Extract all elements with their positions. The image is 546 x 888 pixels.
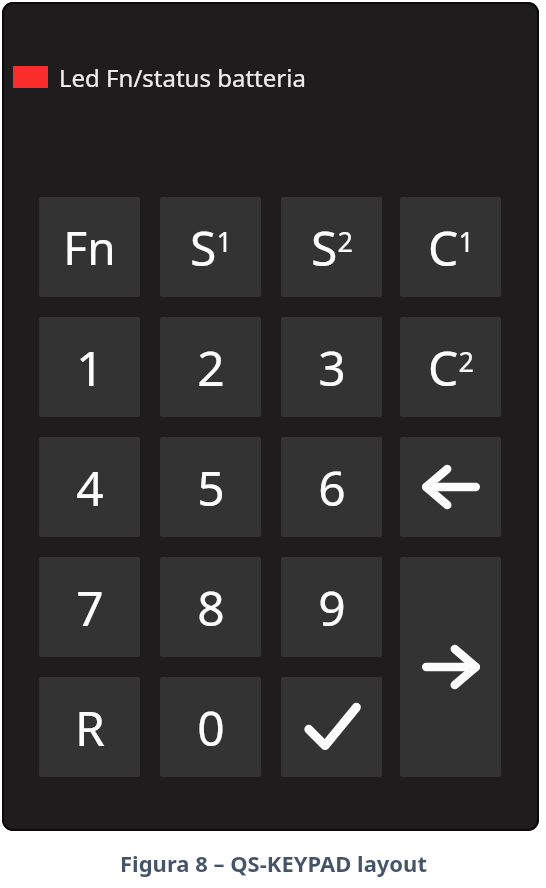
button[interactable]: S1 — [160, 197, 261, 297]
button[interactable]: 4 — [39, 437, 140, 537]
staticText: Fn — [63, 216, 116, 279]
button[interactable]: S2 — [281, 197, 382, 297]
staticText: 4 — [76, 455, 104, 520]
staticText: R — [75, 695, 105, 760]
staticText: 8 — [197, 575, 225, 640]
button[interactable]: 8 — [160, 557, 261, 657]
button[interactable]: C2 — [400, 317, 501, 417]
staticText: S2 — [311, 215, 353, 280]
staticText: 9 — [318, 575, 346, 640]
staticText: 1 — [76, 335, 104, 400]
staticText: C1 — [428, 215, 474, 280]
button[interactable]: 6 — [281, 437, 382, 537]
button[interactable]: Fn — [39, 197, 140, 297]
button[interactable]: 3 — [281, 317, 382, 417]
staticText: C2 — [428, 335, 474, 400]
button[interactable]: Confirm — [281, 677, 382, 777]
button[interactable]: 2 — [160, 317, 261, 417]
button[interactable]: C1 — [400, 197, 501, 297]
staticText: Led Fn/status batteria — [59, 61, 306, 93]
button[interactable]: R — [39, 677, 140, 777]
staticText: 2 — [197, 335, 225, 400]
staticText: S1 — [190, 215, 232, 280]
staticText: 0 — [197, 695, 225, 760]
button[interactable]: Backspace — [400, 437, 501, 537]
button[interactable]: 7 — [39, 557, 140, 657]
button[interactable]: 5 — [160, 437, 261, 537]
button[interactable]: 0 — [160, 677, 261, 777]
button[interactable]: 9 — [281, 557, 382, 657]
staticText: 7 — [76, 575, 104, 640]
staticText: 5 — [197, 455, 225, 520]
staticText: 6 — [318, 455, 346, 520]
staticText: Figura 8 – QS-KEYPAD layout — [120, 848, 427, 878]
button[interactable]: Enter — [400, 557, 501, 777]
staticText: 3 — [318, 335, 346, 400]
button[interactable]: 1 — [39, 317, 140, 417]
